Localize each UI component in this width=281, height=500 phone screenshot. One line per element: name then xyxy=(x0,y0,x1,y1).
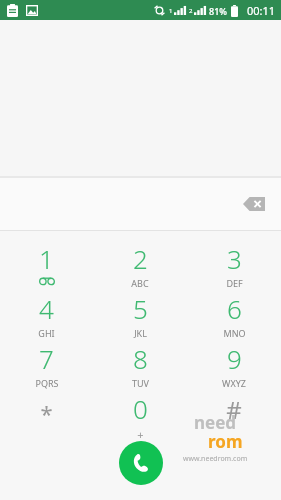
staticText: JKL xyxy=(134,327,147,339)
button[interactable]: 2 xyxy=(93,239,187,289)
staticText: 5 xyxy=(133,291,148,326)
button[interactable]: 7 xyxy=(0,339,93,389)
button[interactable]: 0 xyxy=(93,389,187,439)
staticText: ABC xyxy=(131,277,149,289)
staticText: # xyxy=(226,393,242,426)
button[interactable]: * xyxy=(0,389,93,439)
staticText: PQRS xyxy=(35,377,59,389)
staticText: GHI xyxy=(38,327,55,339)
button[interactable]: # xyxy=(187,389,281,439)
staticText: 2 xyxy=(189,7,193,15)
button[interactable]: 9 xyxy=(187,339,281,389)
button[interactable]: 1 xyxy=(0,239,93,289)
staticText: 8 xyxy=(133,341,148,376)
staticText: + xyxy=(137,427,144,439)
staticText: WXYZ xyxy=(222,377,246,389)
staticText: 7 xyxy=(39,341,54,376)
staticText: 1 xyxy=(169,7,173,15)
staticText: 6 xyxy=(227,291,242,326)
staticText: 4 xyxy=(39,291,54,326)
staticText: MNO xyxy=(223,327,246,339)
staticText: 81% xyxy=(209,5,227,17)
staticText: 1 xyxy=(39,241,54,276)
staticText: DEF xyxy=(226,277,243,289)
button[interactable]: 3 xyxy=(187,239,281,289)
staticText: 9 xyxy=(227,341,242,376)
button[interactable]: 5 xyxy=(93,289,187,339)
staticText: 2 xyxy=(133,241,148,276)
button[interactable]: Call xyxy=(119,441,163,485)
staticText: rom xyxy=(208,430,243,453)
staticText: * xyxy=(40,398,53,428)
staticText: TUV xyxy=(132,377,149,389)
staticText: need xyxy=(194,411,237,434)
button[interactable]: 8 xyxy=(93,339,187,389)
button[interactable]: 6 xyxy=(187,289,281,339)
button[interactable]: 4 xyxy=(0,289,93,339)
staticText: 3 xyxy=(227,241,242,276)
staticText: 0 xyxy=(133,391,148,426)
staticText: 00:11 xyxy=(247,3,276,18)
staticText: www.needrom.com xyxy=(183,454,248,464)
button[interactable]: Backspace xyxy=(237,191,271,217)
